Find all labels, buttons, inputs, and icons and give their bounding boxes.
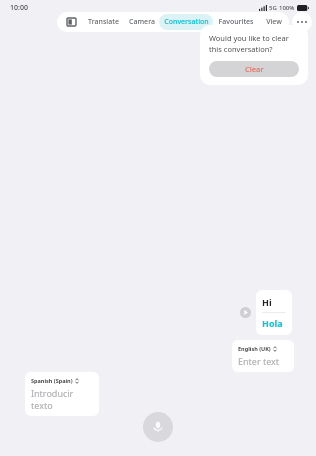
staticText: Camera [129,17,155,27]
button[interactable]: English (UK) [232,340,294,372]
staticText: View [266,17,282,27]
button[interactable]: Conversation [159,14,213,30]
button[interactable]: Clear [209,61,299,77]
staticText: 5G [269,4,277,12]
staticText: Translate [88,17,119,27]
staticText: Clear [245,64,264,74]
staticText: Favourites [218,17,254,27]
button[interactable]: More options [292,12,312,32]
button[interactable]: Side panel [64,15,78,29]
button[interactable]: View [258,14,289,30]
staticText: Would you like to clear this conversatio… [209,33,299,54]
staticText: 10:00 [10,3,28,13]
staticText: Introducir texto [31,387,93,411]
staticText: Hola [262,317,283,329]
button[interactable]: Favourites [213,14,258,30]
staticText: Hi [262,296,272,308]
button[interactable]: Translate [82,14,124,30]
button[interactable]: Spanish (Spain) [25,372,99,416]
staticText: English (UK) [238,345,271,352]
staticText: 100% [279,4,295,12]
button[interactable]: Camera [124,14,159,30]
staticText: Spanish (Spain) [31,377,73,384]
staticText: Conversation [164,17,209,27]
button[interactable]: Hi [256,290,292,335]
button[interactable]: Play [240,307,251,318]
staticText: Enter text [238,355,280,367]
button[interactable]: Microphone [143,412,173,442]
